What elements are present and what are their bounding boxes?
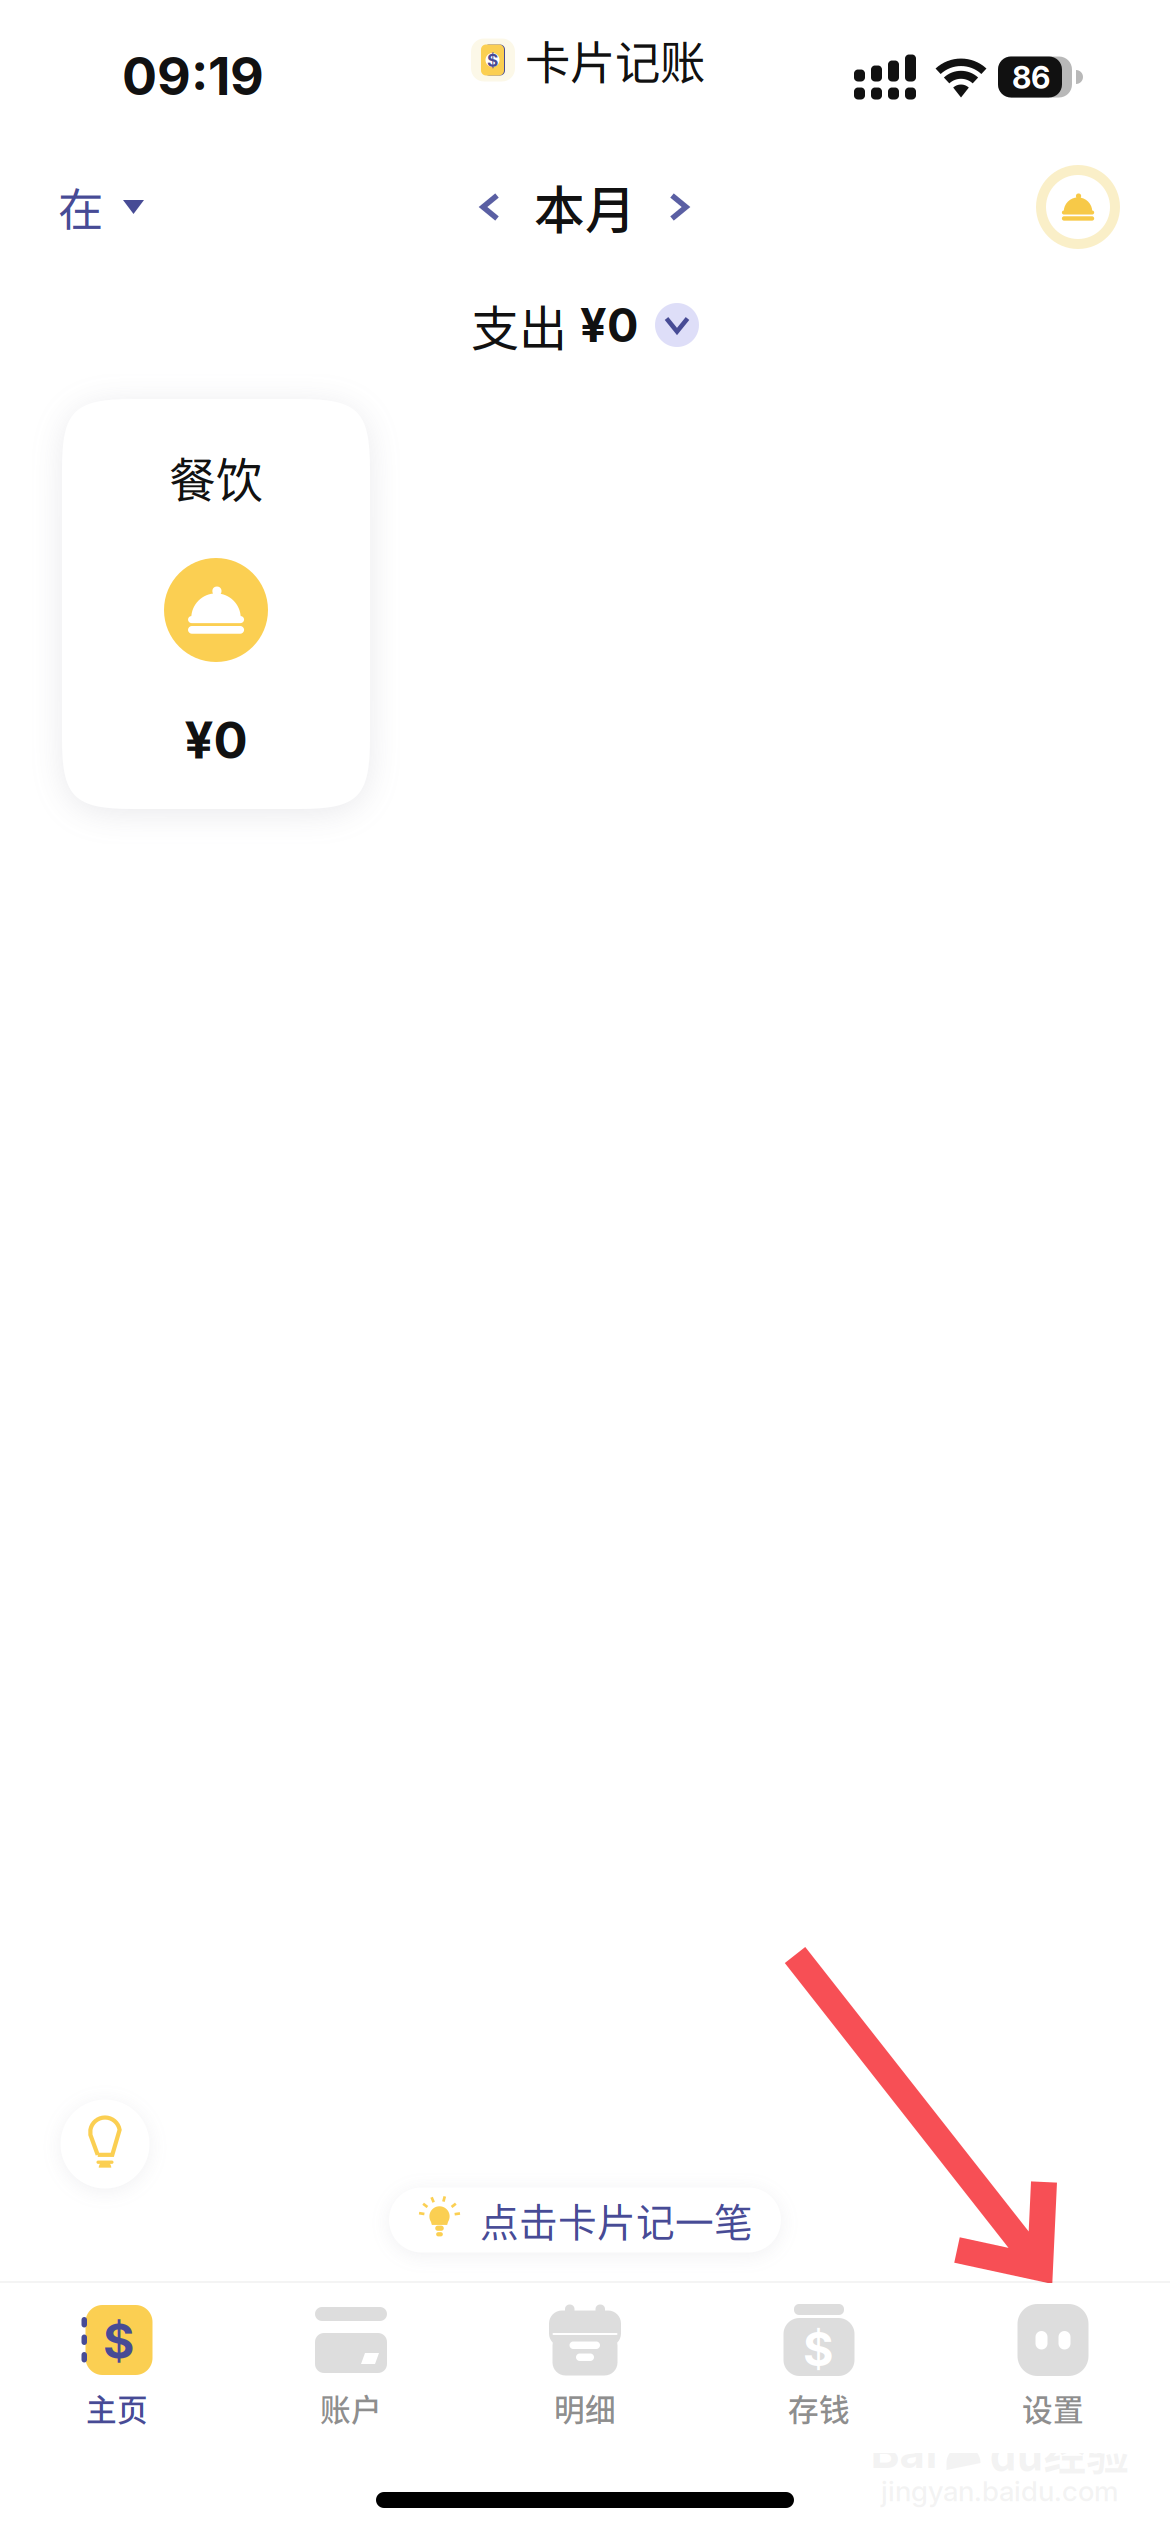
button[interactable]: 餐饮分类 [1036,165,1120,249]
staticText: Bai [870,2425,937,2479]
staticText: 09:19 [122,44,264,107]
button[interactable]: 明细 [468,2283,702,2453]
staticText: 86 [1012,59,1050,96]
button[interactable]: 设置 [936,2283,1170,2453]
button[interactable]: 上个月 [454,169,526,245]
staticText: 设置 [1022,2386,1084,2430]
button[interactable]: 点击卡片记一笔 [389,2187,781,2252]
button[interactable]: $ [0,2283,234,2453]
staticText: ¥0 [184,709,247,771]
button[interactable]: 记账提示 [60,2099,150,2189]
staticText: 存钱 [788,2386,850,2430]
staticText: 点击卡片记一笔 [480,2192,753,2248]
button[interactable]: 餐饮 [62,399,370,809]
button[interactable]: 账户 [234,2283,468,2453]
staticText: 账户 [320,2386,382,2430]
staticText: 支出 [471,290,567,360]
button[interactable]: 支出 [471,279,699,371]
staticText: 餐饮 [169,443,263,511]
staticText: jingyan.baidu.com [881,2474,1119,2508]
button[interactable]: $ [702,2283,936,2453]
staticText: du经验 [989,2421,1129,2483]
staticText: $ [487,50,498,71]
button[interactable]: 在 [44,159,158,255]
staticText: $ [803,2321,834,2377]
staticText: 明细 [554,2386,616,2430]
staticText: 主页 [86,2386,148,2430]
button[interactable]: 下个月 [643,169,715,245]
staticText: 在 [58,174,103,240]
staticText: 卡片记账 [525,27,705,93]
staticText: 本月 [534,170,636,244]
staticText: ¥0 [580,297,638,353]
staticText: $ [103,2312,134,2370]
